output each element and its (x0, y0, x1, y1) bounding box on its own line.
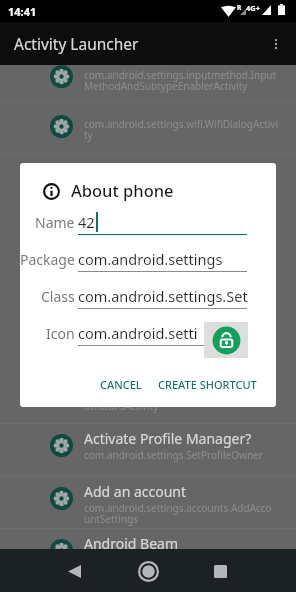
button[interactable]: com.android.settings.wifi.WifiDialogActi… (0, 102, 296, 153)
staticText: 4G+ (246, 3, 261, 13)
button[interactable]: Icon preview (204, 322, 248, 358)
staticText: CANCEL (100, 377, 142, 392)
staticText: Package (20, 250, 75, 269)
staticText: com.android.settings.SetProfileOwner (84, 448, 263, 462)
staticText: com.android.settings.Set (78, 286, 248, 306)
staticText: com.android.settings.accounts.AddAccount… (84, 501, 275, 526)
button[interactable]: Android Beam (0, 528, 296, 549)
button[interactable]: Add an account (0, 476, 296, 528)
button[interactable]: Activate Profile Manager? (0, 423, 296, 476)
button[interactable]: Home (128, 551, 168, 591)
staticText: ashtcardActivity (84, 399, 159, 413)
staticText: com.android.settings (78, 249, 223, 269)
button[interactable]: CANCEL (92, 370, 150, 399)
staticText: Class (41, 287, 75, 306)
button[interactable]: ashtcardActivity (0, 390, 296, 423)
staticText: Add an account (84, 482, 187, 501)
staticText: Activate Profile Manager? (84, 429, 252, 448)
button[interactable]: CREATE SHORTCUT (150, 370, 265, 399)
button[interactable]: More options (259, 27, 293, 61)
button[interactable]: com.android.settings.inputmethod.InputMe… (0, 65, 296, 102)
staticText: com.android.settings.inputmethod.InputMe… (84, 68, 278, 93)
staticText: 42 (78, 212, 95, 232)
staticText: Name (35, 213, 75, 232)
staticText: R (237, 3, 242, 12)
staticText: com.android.setti (78, 323, 198, 343)
staticText: Android Beam (84, 534, 178, 553)
staticText: Activity Launcher (14, 33, 139, 54)
staticText: com.android.settings.wifi.WifiDialogActi… (84, 117, 278, 142)
button[interactable]: Back (54, 551, 94, 591)
button[interactable]: Recents (200, 551, 240, 591)
staticText: About phone (71, 179, 174, 201)
staticText: Icon (46, 324, 75, 343)
staticText: CREATE SHORTCUT (158, 377, 257, 392)
staticText: 14:41 (8, 4, 37, 19)
